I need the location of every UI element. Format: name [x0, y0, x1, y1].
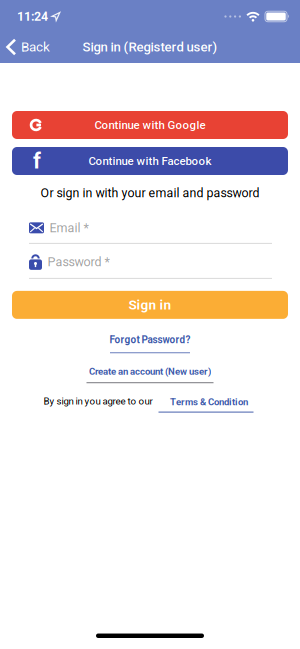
staticText: Sign in — [128, 297, 171, 313]
staticText: Terms & Condition — [170, 396, 248, 408]
button[interactable]: Email * — [0, 220, 300, 244]
button[interactable]: Continue with Facebook — [12, 147, 288, 175]
button[interactable]: Back — [0, 39, 50, 56]
button[interactable]: Password * — [0, 254, 300, 279]
button[interactable]: Terms & Condition — [161, 396, 256, 413]
button[interactable]: Sign in — [12, 291, 288, 319]
staticText: Forgot Password? — [109, 334, 190, 346]
staticText: Create an account (New user) — [89, 366, 211, 377]
staticText: Password * — [47, 254, 109, 269]
staticText: Or sign in with your email and password — [40, 186, 259, 200]
staticText: 11:24 — [17, 9, 48, 24]
staticText: Continue with Facebook — [88, 154, 211, 168]
staticText: Back — [21, 39, 50, 55]
staticText: Continue with Google — [94, 118, 205, 132]
button[interactable]: Create an account (New user) — [86, 366, 213, 383]
staticText: f — [33, 148, 41, 174]
button[interactable]: Forgot Password? — [109, 334, 190, 353]
staticText: Email * — [49, 220, 88, 235]
staticText: By sign in you agree to our — [43, 395, 152, 407]
staticText: Sign in (Registerd user) — [82, 39, 217, 55]
button[interactable]: Continue with Google — [12, 111, 288, 139]
